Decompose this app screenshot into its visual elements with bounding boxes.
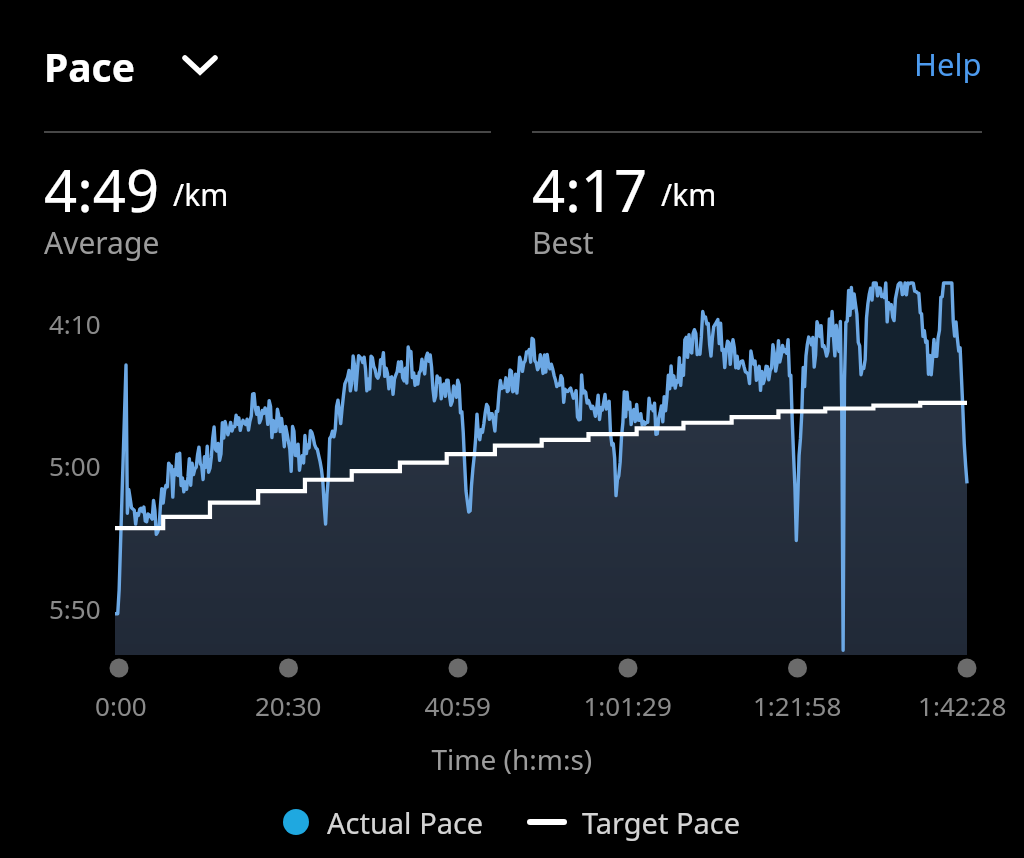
button[interactable]: Pace, change chart metric [36,30,226,102]
button[interactable]: Help [890,30,990,96]
